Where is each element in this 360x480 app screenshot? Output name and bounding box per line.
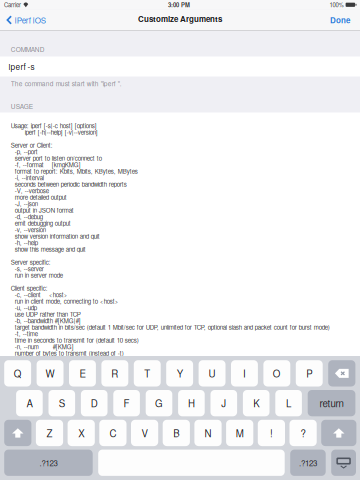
staticText: R xyxy=(111,366,118,380)
staticText: iperf -s xyxy=(8,61,34,72)
staticText: USAGE xyxy=(11,101,33,111)
staticText: output in JSON format xyxy=(11,206,74,214)
staticText: ! xyxy=(270,426,273,440)
button[interactable]: iperf -s xyxy=(0,56,360,76)
button[interactable]: X xyxy=(68,420,95,446)
staticText: ? xyxy=(301,426,306,440)
staticText: The command must start with "iperf ". xyxy=(11,79,122,88)
staticText: G xyxy=(155,396,163,410)
button[interactable]: Shift xyxy=(321,420,356,446)
button[interactable]: K xyxy=(243,390,269,416)
staticText: X xyxy=(78,426,84,440)
staticText: O xyxy=(273,366,281,380)
button[interactable]: Done xyxy=(330,9,360,30)
staticText: Client specific: xyxy=(11,284,48,292)
staticText: M xyxy=(236,426,244,440)
staticText: H xyxy=(188,396,195,410)
staticText: .?123 xyxy=(299,457,317,468)
staticText: -v, --version xyxy=(11,225,46,234)
staticText: show version information and quit xyxy=(11,232,100,240)
staticText: number of bytes to transmit (instead of … xyxy=(11,349,124,357)
button[interactable]: .?123 xyxy=(290,450,326,476)
button[interactable]: O xyxy=(263,360,290,386)
button[interactable]: J xyxy=(210,390,237,416)
button[interactable]: Q xyxy=(4,360,31,386)
button[interactable]: ? xyxy=(289,420,317,446)
staticText: C xyxy=(109,426,116,440)
staticText: E xyxy=(79,366,85,380)
button[interactable]: P xyxy=(296,360,323,386)
button[interactable]: V xyxy=(131,420,158,446)
button[interactable]: return xyxy=(308,390,355,416)
staticText: Carrier xyxy=(4,0,21,9)
staticText: run in server mode xyxy=(11,271,63,279)
button[interactable]: iPerf iOS xyxy=(0,9,46,30)
button[interactable]: Delete xyxy=(328,360,355,386)
staticText: more detailed output xyxy=(11,193,67,201)
staticText: U xyxy=(208,366,215,380)
button[interactable]: H xyxy=(178,390,205,416)
staticText: time in seconds to transmit for (default… xyxy=(11,336,139,344)
staticText: W xyxy=(45,366,54,380)
button[interactable]: D xyxy=(81,390,107,416)
button[interactable]: E xyxy=(69,360,96,386)
staticText: return xyxy=(320,396,344,410)
button[interactable]: Hide keyboard xyxy=(331,450,356,476)
button[interactable]: C xyxy=(99,420,126,446)
staticText: -n, --num #[KMG] xyxy=(11,342,74,351)
button[interactable]: B xyxy=(163,420,190,446)
button[interactable]: Z xyxy=(36,420,63,446)
button[interactable]: M xyxy=(226,420,253,446)
button[interactable]: T xyxy=(134,360,161,386)
staticText: show this message and quit xyxy=(11,245,86,253)
staticText: Y xyxy=(177,366,183,380)
staticText: 3:00 PM xyxy=(168,0,190,9)
staticText: -V, --verbose xyxy=(11,186,49,195)
staticText: emit debugging output xyxy=(11,219,71,227)
staticText: iPerf iOS xyxy=(15,14,46,26)
staticText: -f, --format [kmgKMG] xyxy=(11,160,81,169)
staticText: server port to listen on/connect to xyxy=(11,154,102,162)
button[interactable]: S xyxy=(48,390,75,416)
staticText: -s, --server xyxy=(11,264,44,273)
button[interactable]: W xyxy=(37,360,63,386)
staticText: -c, --client <host> xyxy=(11,290,68,299)
staticText: Q xyxy=(14,366,22,380)
staticText: S xyxy=(59,396,65,410)
button[interactable]: Y xyxy=(166,360,193,386)
staticText: Done xyxy=(330,14,350,26)
staticText: A xyxy=(26,396,32,410)
staticText: T xyxy=(144,366,150,380)
staticText: .?123 xyxy=(39,457,57,468)
button[interactable]: ! xyxy=(258,420,285,446)
button[interactable]: Shift xyxy=(4,420,31,446)
staticText: Usage: iperf [-s|-c host] [options] xyxy=(11,121,97,130)
staticText: -u, --udp xyxy=(11,303,37,312)
staticText: COMMAND xyxy=(11,44,45,54)
staticText: -i, --interval xyxy=(11,173,44,182)
staticText: -t, --time xyxy=(11,329,38,338)
staticText: N xyxy=(204,426,211,440)
staticText: target bandwidth in bits/sec (default 1 … xyxy=(11,323,330,331)
staticText: iperf [-h|--help] [-v|--version] xyxy=(11,128,98,136)
button[interactable]: N xyxy=(194,420,222,446)
button[interactable]: A xyxy=(16,390,43,416)
button[interactable]: U xyxy=(199,360,225,386)
staticText: Customize Arguments xyxy=(138,13,222,25)
staticText: Z xyxy=(46,426,52,440)
staticText: F xyxy=(124,396,130,410)
button[interactable]: L xyxy=(275,390,302,416)
staticText: -h, --help xyxy=(11,238,38,247)
button[interactable]: F xyxy=(113,390,140,416)
staticText: Server specific: xyxy=(11,258,51,266)
button[interactable]: I xyxy=(231,360,258,386)
button[interactable]: G xyxy=(146,390,172,416)
button[interactable]: R xyxy=(101,360,128,386)
staticText: Server or Client: xyxy=(11,141,53,149)
staticText: seconds between periodic bandwidth repor… xyxy=(11,180,127,188)
staticText: V xyxy=(142,426,148,440)
staticText: D xyxy=(91,396,98,410)
button[interactable]: .?123 xyxy=(4,450,93,476)
staticText: B xyxy=(173,426,179,440)
